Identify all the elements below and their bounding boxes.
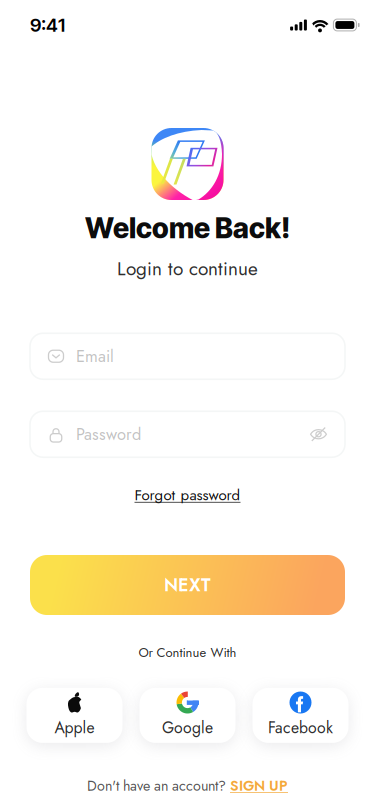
staticText: Password: [76, 422, 141, 446]
button[interactable]: Don't have an account?: [87, 775, 288, 796]
button[interactable]: Show password: [307, 423, 330, 446]
button[interactable]: Forgot password: [134, 484, 240, 506]
staticText: Facebook: [268, 716, 333, 739]
staticText: Forgot password: [134, 484, 240, 506]
staticText: Don't have an account?: [87, 775, 226, 796]
staticText: Welcome Back!: [85, 211, 290, 245]
staticText: Google: [162, 716, 213, 739]
staticText: Apple: [54, 716, 94, 739]
staticText: Login to continue: [117, 255, 258, 282]
button[interactable]: Facebook: [252, 688, 348, 743]
staticText: SIGN UP: [230, 775, 288, 796]
button[interactable]: Apple: [26, 688, 122, 743]
staticText: NEXT: [164, 572, 211, 598]
button[interactable]: NEXT: [30, 555, 345, 615]
staticText: Email: [76, 344, 114, 368]
staticText: 9:41: [30, 14, 65, 36]
staticText: Or Continue With: [138, 643, 236, 662]
button[interactable]: Google: [139, 688, 235, 743]
